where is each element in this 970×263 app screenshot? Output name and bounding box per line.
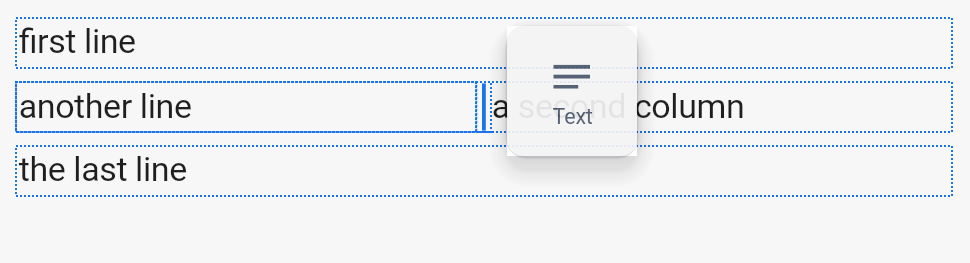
button[interactable] — [15, 17, 953, 69]
button[interactable] — [15, 81, 953, 133]
button[interactable] — [15, 145, 953, 197]
other: Insertion point — [475, 81, 492, 133]
